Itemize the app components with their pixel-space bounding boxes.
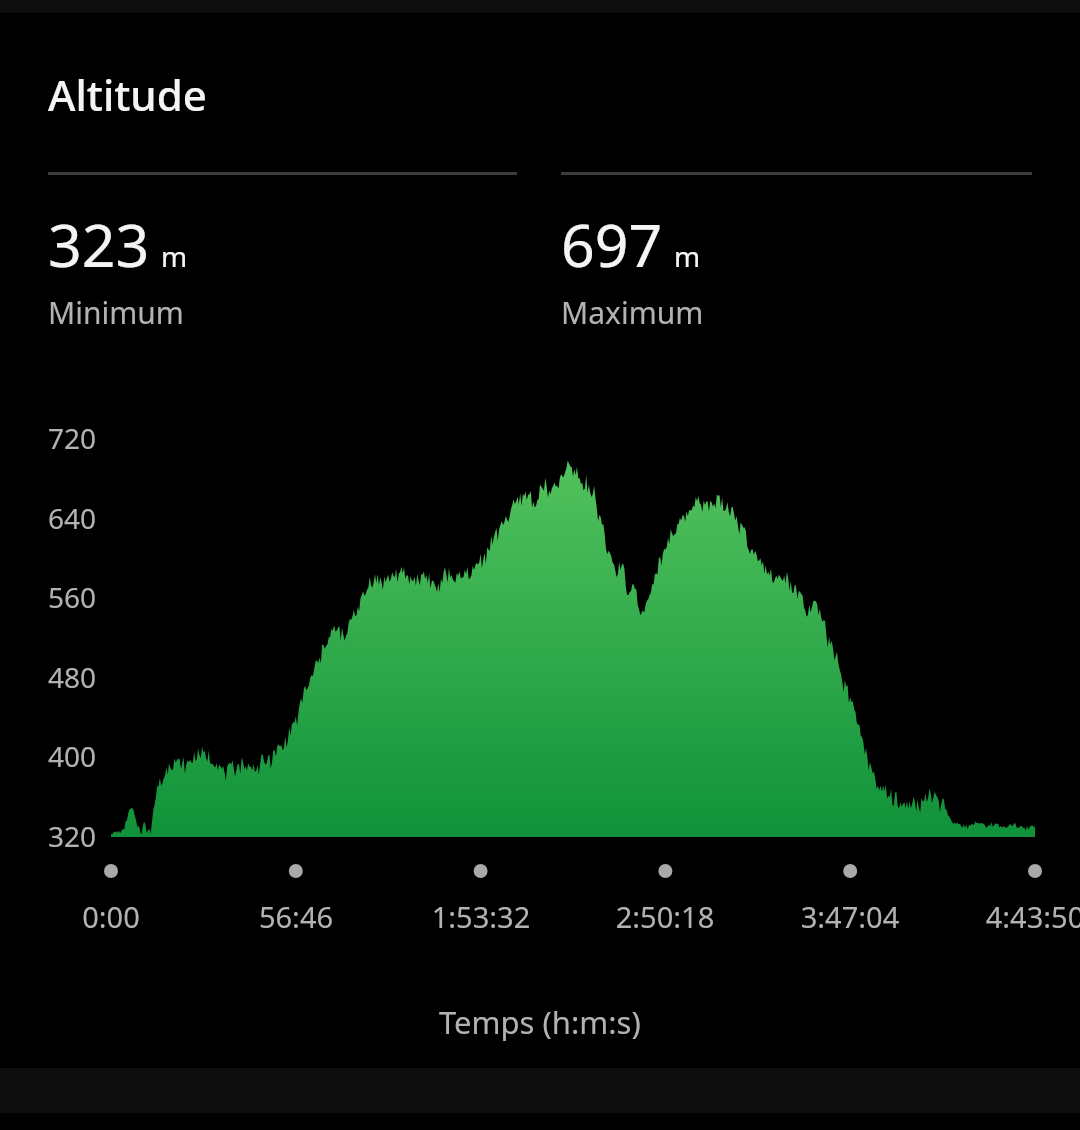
staticText: Minimum bbox=[48, 292, 184, 333]
staticText: Maximum bbox=[561, 292, 704, 333]
staticText: 697 bbox=[561, 204, 663, 284]
staticText: 3:47:04 bbox=[740, 897, 960, 936]
staticText: m bbox=[674, 237, 701, 275]
staticText: 320 bbox=[0, 817, 96, 855]
staticText: 640 bbox=[0, 499, 96, 537]
staticText: 56:46 bbox=[186, 897, 406, 936]
staticText: 0:00 bbox=[1, 897, 221, 936]
staticText: 323 bbox=[48, 204, 150, 284]
staticText: 480 bbox=[0, 658, 96, 696]
staticText: 4:43:50 bbox=[925, 897, 1080, 936]
staticText: 2:50:18 bbox=[555, 897, 775, 936]
staticText: 720 bbox=[0, 419, 96, 457]
other: Altitude profile chart bbox=[0, 416, 1080, 1056]
staticText: Temps (h:m:s) bbox=[439, 1001, 641, 1043]
staticText: 1:53:32 bbox=[371, 897, 591, 936]
button[interactable]: Altitude bbox=[0, 0, 1080, 120]
staticText: Altitude bbox=[48, 66, 207, 120]
button[interactable]: 323 bbox=[48, 204, 561, 333]
staticText: m bbox=[161, 237, 188, 275]
staticText: 560 bbox=[0, 578, 96, 616]
button[interactable]: 697 bbox=[561, 204, 1032, 333]
staticText: 400 bbox=[0, 737, 96, 775]
